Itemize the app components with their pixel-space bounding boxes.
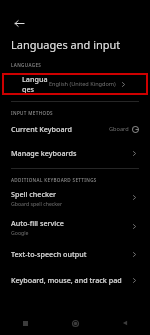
button[interactable]: Recents (0, 311, 50, 335)
staticText: Gboard (109, 125, 129, 133)
button[interactable]: Back (100, 311, 150, 335)
staticText: Languages (22, 74, 49, 94)
staticText: Manage keyboards (11, 148, 77, 158)
button[interactable]: Manage keyboards (0, 143, 150, 163)
staticText: ADDITIONAL KEYBOARD SETTINGS (11, 177, 97, 183)
button[interactable]: Home (50, 311, 100, 335)
staticText: Auto-fill service (11, 218, 64, 228)
staticText: Keyboard, mouse, and track pad (11, 275, 122, 285)
button[interactable]: Keyboard, mouse, and track pad (0, 270, 150, 290)
staticText: LANGUAGES (11, 62, 42, 68)
button[interactable]: Languages (11, 73, 139, 95)
button[interactable]: Spell checker (0, 186, 150, 209)
staticText: Text-to-speech output (11, 249, 87, 259)
staticText: Gboard spell checker (11, 200, 63, 207)
staticText: Languages and input (11, 37, 121, 52)
button[interactable]: Back (8, 12, 30, 34)
staticText: Google (11, 229, 29, 236)
staticText: INPUT METHODS (11, 110, 53, 116)
staticText: Spell checker (11, 189, 57, 199)
staticText: English (United Kingdom) (49, 80, 116, 88)
button[interactable]: Current Keyboard (0, 119, 150, 139)
button[interactable]: Text-to-speech output (0, 244, 150, 264)
staticText: Current Keyboard (11, 124, 72, 134)
button[interactable]: Auto-fill service (0, 215, 150, 238)
